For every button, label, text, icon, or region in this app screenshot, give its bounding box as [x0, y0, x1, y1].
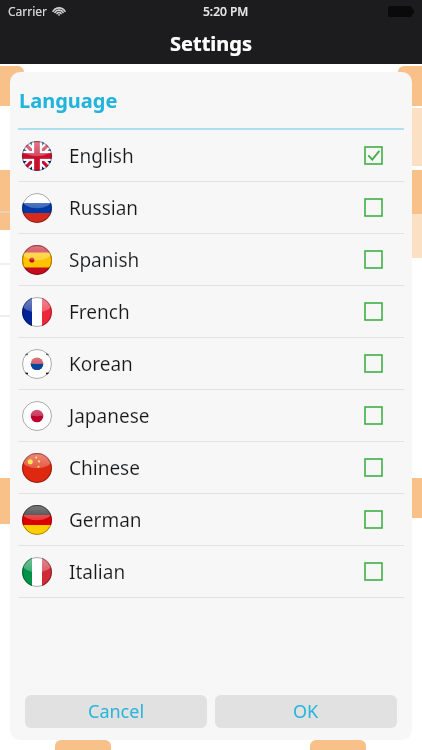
staticText: Settings: [170, 30, 252, 57]
button[interactable]: Spanish: [10, 234, 412, 285]
button[interactable]: French: [10, 286, 412, 337]
button[interactable]: Korean: [10, 338, 412, 389]
staticText: Spanish: [69, 247, 140, 273]
staticText: OK: [293, 699, 319, 724]
button[interactable]: Russian: [10, 182, 412, 233]
staticText: Japanese: [69, 403, 150, 429]
staticText: Language: [19, 87, 118, 114]
button[interactable]: OK: [215, 695, 397, 728]
button[interactable]: Italian: [10, 546, 412, 597]
button[interactable]: Japanese: [10, 390, 412, 441]
staticText: Carrier: [8, 3, 48, 19]
staticText: French: [69, 299, 130, 325]
staticText: 5:20 PM: [203, 3, 249, 19]
staticText: Cancel: [88, 699, 145, 724]
staticText: Italian: [69, 559, 126, 585]
staticText: Korean: [69, 351, 133, 377]
staticText: Chinese: [69, 455, 140, 481]
button[interactable]: Chinese: [10, 442, 412, 493]
button[interactable]: English: [10, 130, 412, 181]
staticText: German: [69, 507, 142, 533]
button[interactable]: Cancel: [25, 695, 207, 728]
button[interactable]: German: [10, 494, 412, 545]
staticText: Russian: [69, 195, 139, 221]
staticText: English: [69, 143, 134, 169]
